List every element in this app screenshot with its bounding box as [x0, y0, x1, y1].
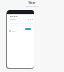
button[interactable]: Devices [10, 15, 18, 18]
staticText: watch details and sync status [10, 22, 34, 24]
staticText: Wear [28, 1, 36, 5]
staticText: connect watch [25, 5, 39, 8]
button[interactable]: Device [9, 18, 34, 27]
button[interactable]: Pair [9, 30, 16, 32]
staticText: Devices [10, 15, 18, 18]
button[interactable]: Connect [25, 28, 31, 30]
staticText: Device [10, 18, 16, 21]
staticText: Pair [12, 30, 16, 32]
